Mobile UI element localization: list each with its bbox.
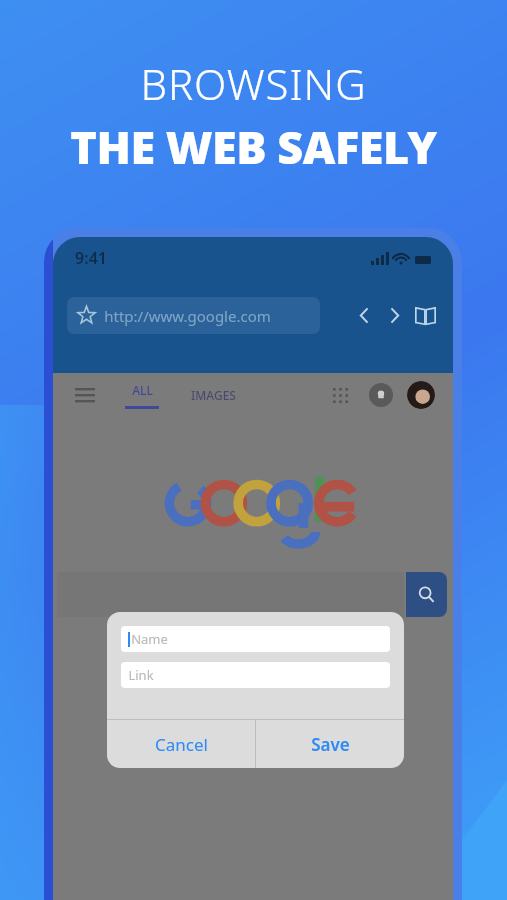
staticText: IMAGES <box>191 387 236 403</box>
staticText: Name <box>131 630 168 648</box>
button[interactable]: Save <box>256 720 404 768</box>
button[interactable]: Link <box>121 662 390 688</box>
staticText: Link <box>128 666 154 684</box>
button[interactable]: Google apps <box>327 382 353 408</box>
button[interactable]: Name <box>121 626 390 652</box>
button[interactable] <box>57 572 404 617</box>
button[interactable]: Cancel <box>107 720 255 768</box>
staticText: Cancel <box>155 733 208 756</box>
button[interactable]: Menu <box>71 381 99 409</box>
staticText: ALL <box>132 382 153 398</box>
button[interactable]: IMAGES <box>185 387 242 403</box>
button[interactable]: Bookmarks <box>409 299 441 331</box>
staticText: BROWSING <box>140 55 367 112</box>
button[interactable]: Forward <box>379 300 409 330</box>
button[interactable]: Search <box>406 572 447 617</box>
button[interactable]: Notifications <box>369 383 393 407</box>
button[interactable]: http://www.google.com <box>67 297 320 334</box>
staticText: http://www.google.com <box>104 306 271 326</box>
staticText: 9:41 <box>75 247 107 269</box>
staticText: THE WEB SAFELY <box>70 116 437 177</box>
button[interactable]: Account <box>407 381 435 409</box>
button[interactable]: Back <box>349 300 379 330</box>
staticText: Save <box>311 733 350 756</box>
button[interactable]: ALL <box>119 382 165 409</box>
